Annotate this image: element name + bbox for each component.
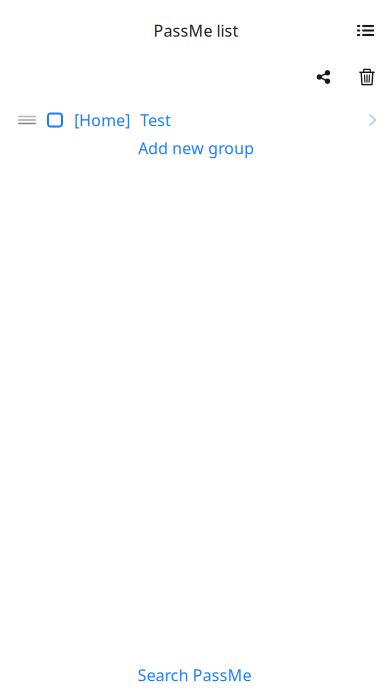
- staticText: Test: [140, 109, 171, 131]
- button[interactable]: Search PassMe: [0, 660, 392, 690]
- button[interactable]: Select group: [41, 107, 68, 132]
- button[interactable]: Reorder group: [0, 107, 41, 133]
- staticText: [Home]: [74, 109, 130, 131]
- button[interactable]: Delete: [349, 61, 385, 91]
- button[interactable]: [Home]: [68, 105, 171, 135]
- staticText: Search PassMe: [137, 664, 251, 686]
- button[interactable]: List display options: [347, 16, 384, 46]
- button[interactable]: Share: [306, 60, 341, 91]
- staticText: Add new group: [138, 137, 254, 159]
- staticText: PassMe list: [153, 20, 238, 41]
- button[interactable]: Add new group: [0, 135, 392, 163]
- button[interactable]: Open group: [359, 107, 392, 133]
